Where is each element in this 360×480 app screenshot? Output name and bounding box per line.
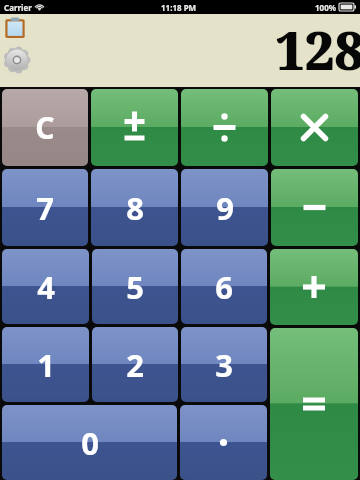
button[interactable]: 3: [181, 327, 267, 402]
button[interactable]: Divide: [181, 89, 268, 166]
staticText: 11:18 PM: [161, 2, 197, 13]
staticText: 8: [126, 187, 144, 229]
button[interactable]: 2: [92, 327, 178, 402]
button[interactable]: Multiply: [271, 89, 358, 166]
button[interactable]: 6: [181, 249, 267, 324]
staticText: 6: [215, 266, 233, 308]
staticText: 5: [126, 266, 144, 308]
button[interactable]: Decimal point: [180, 405, 267, 480]
button[interactable]: 5: [92, 249, 178, 324]
button[interactable]: Minus: [271, 169, 358, 246]
staticText: 2: [126, 344, 144, 386]
button[interactable]: 8: [91, 169, 178, 246]
staticText: 100%: [315, 2, 336, 13]
staticText: C: [35, 107, 55, 148]
button[interactable]: Plus or minus: [91, 89, 178, 166]
button[interactable]: 4: [2, 249, 89, 324]
staticText: Carrier: [4, 2, 32, 13]
staticText: 3: [215, 344, 233, 386]
staticText: 1: [37, 344, 55, 386]
staticText: 7: [36, 187, 54, 229]
button[interactable]: Paste from clipboard: [2, 15, 28, 41]
staticText: 128: [275, 14, 360, 85]
staticText: 9: [216, 187, 234, 229]
staticText: 0: [81, 422, 99, 464]
button[interactable]: 7: [2, 169, 88, 246]
button[interactable]: Plus: [270, 249, 358, 325]
button[interactable]: 9: [181, 169, 268, 246]
button[interactable]: 0: [2, 405, 177, 480]
staticText: 4: [37, 266, 55, 308]
button[interactable]: 1: [2, 327, 89, 402]
button[interactable]: C: [2, 89, 88, 166]
button[interactable]: Settings: [2, 45, 32, 75]
button[interactable]: Equals: [270, 328, 358, 480]
